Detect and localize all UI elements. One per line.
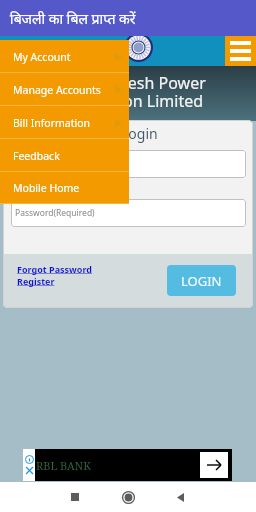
staticText: Forgot Password xyxy=(17,263,92,275)
button[interactable]: Open ad xyxy=(200,452,228,478)
staticText: RBL BANK xyxy=(36,458,91,473)
staticText: Mobile Home xyxy=(13,181,80,195)
button[interactable]: Bill Information xyxy=(0,106,129,139)
button[interactable]: LOGIN xyxy=(167,265,236,296)
staticText: Bill Information xyxy=(13,116,91,130)
staticText: My Account xyxy=(13,50,71,64)
button[interactable]: Advertisement RBL BANK xyxy=(23,449,232,481)
button[interactable]: Recent apps xyxy=(59,482,91,512)
staticText: Uttar Pradesh Power xyxy=(50,72,206,94)
button[interactable]: Manage Accounts xyxy=(0,73,129,106)
button[interactable]: Feedback xyxy=(0,139,129,172)
staticText: Manage Accounts xyxy=(13,83,101,97)
staticText: Corporation Limited xyxy=(52,90,204,112)
button[interactable]: Forgot Password xyxy=(17,263,92,287)
staticText: Register xyxy=(17,275,55,287)
button[interactable]: Mobile Home xyxy=(0,172,129,204)
button[interactable]: Back xyxy=(164,482,196,512)
staticText: बिजली का बिल प्राप्त करें xyxy=(10,9,136,28)
staticText: Password(Required) xyxy=(15,207,95,219)
button[interactable] xyxy=(11,150,246,178)
button[interactable]: Home xyxy=(112,482,144,512)
staticText: LOGIN xyxy=(181,272,222,290)
button[interactable]: Password(Required) xyxy=(11,199,246,227)
staticText: Feedback xyxy=(13,149,60,163)
button[interactable]: Open navigation menu xyxy=(225,36,256,66)
button[interactable]: My Account xyxy=(0,40,129,73)
staticText: Login xyxy=(121,124,158,143)
